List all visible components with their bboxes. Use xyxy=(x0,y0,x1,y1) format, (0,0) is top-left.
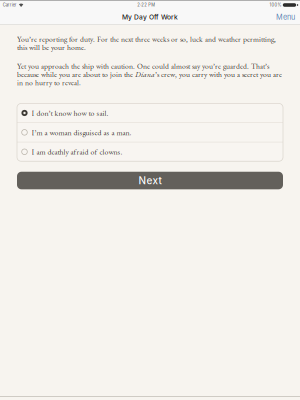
staticText: You’re reporting for duty. For the next … xyxy=(17,35,276,51)
staticText: I am deathly afraid of clowns. xyxy=(31,147,122,157)
staticText: 100% xyxy=(269,2,281,7)
staticText: Carrier xyxy=(3,2,17,7)
button[interactable]: I am deathly afraid of clowns. xyxy=(17,142,283,161)
staticText: I’m a woman disguised as a man. xyxy=(31,127,131,137)
button[interactable]: I’m a woman disguised as a man. xyxy=(17,123,283,142)
staticText: Next xyxy=(138,174,161,187)
button[interactable]: Menu xyxy=(271,10,300,24)
button[interactable]: I don’t know how to sail. xyxy=(17,103,283,122)
button[interactable]: Next xyxy=(17,172,283,189)
staticText: My Day Off Work xyxy=(122,13,178,21)
staticText: 2:22 PM xyxy=(137,2,155,7)
staticText: Menu xyxy=(276,13,295,21)
staticText: Yet you approach the ship with caution. … xyxy=(17,62,282,86)
staticText: I don’t know how to sail. xyxy=(31,108,108,118)
